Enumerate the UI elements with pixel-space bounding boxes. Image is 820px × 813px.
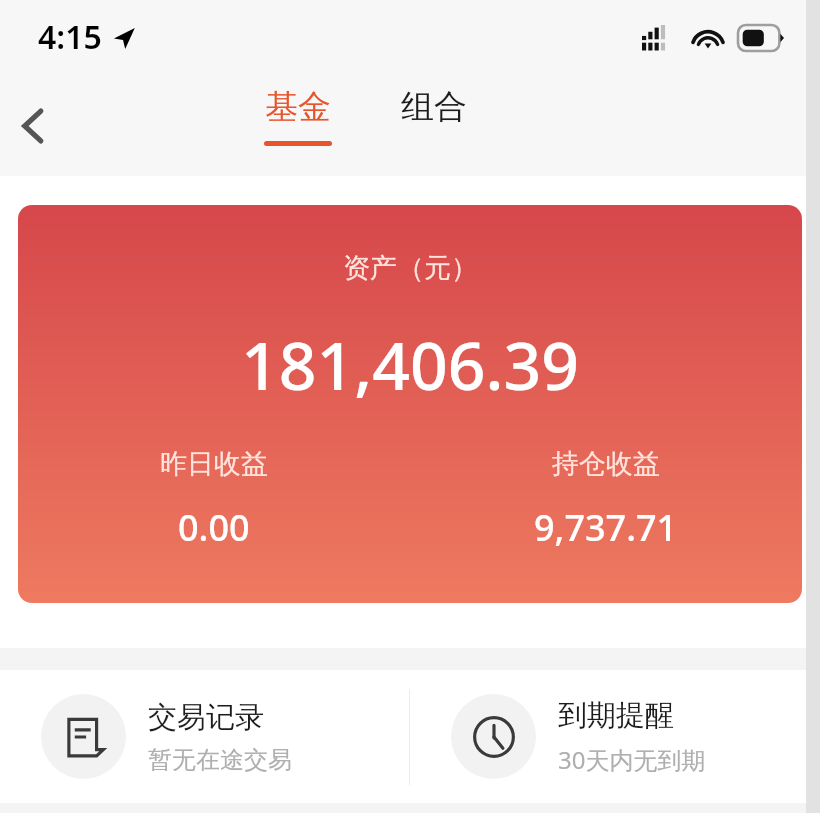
button[interactable]: Back: [0, 93, 66, 159]
button[interactable]: 基金: [258, 76, 338, 146]
staticText: 30天内无到期: [558, 743, 706, 776]
button[interactable]: 到期提醒: [410, 694, 820, 779]
staticText: 181,406.39: [241, 319, 579, 409]
button[interactable]: 组合: [394, 76, 474, 146]
staticText: 9,737.71: [534, 503, 678, 552]
staticText: 昨日收益: [160, 447, 268, 481]
staticText: 持仓收益: [552, 447, 660, 481]
staticText: 组合: [401, 86, 467, 128]
button[interactable]: 交易记录: [0, 694, 409, 779]
staticText: 交易记录: [148, 699, 264, 736]
staticText: 资产（元）: [343, 251, 478, 285]
staticText: 基金: [265, 86, 331, 128]
staticText: 到期提醒: [558, 697, 674, 734]
button[interactable]: 资产（元）: [18, 205, 802, 603]
staticText: 4:15: [38, 15, 102, 59]
staticText: 暂无在途交易: [148, 745, 292, 775]
staticText: 0.00: [178, 503, 250, 552]
